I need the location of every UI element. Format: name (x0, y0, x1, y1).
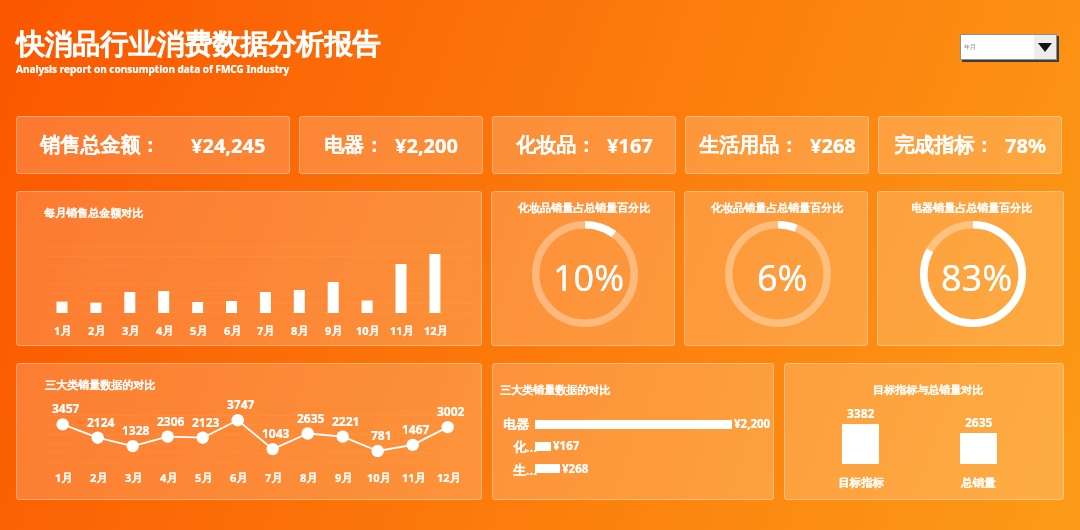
staticText: 每月销售总金额对比 (44, 206, 143, 220)
staticText: 1328 (122, 422, 150, 438)
staticText: 4月 (160, 470, 178, 485)
staticText: ¥24,245 (191, 132, 266, 159)
staticText: ¥167 (553, 438, 580, 454)
button[interactable]: 电器销量占总销量百分比 (877, 191, 1064, 346)
staticText: 3747 (227, 396, 255, 412)
staticText: 化… (513, 438, 538, 456)
staticText: 7月 (265, 470, 283, 485)
staticText: 8月 (291, 323, 309, 338)
staticText: 6月 (230, 470, 248, 485)
staticText: 3月 (122, 323, 140, 338)
button[interactable]: 每月销售总金额对比 (16, 191, 482, 346)
staticText: ¥2,200 (734, 416, 771, 432)
staticText: ¥268 (562, 461, 589, 477)
staticText: 快消品行业消费数据分析报告 (16, 27, 380, 62)
staticText: 1467 (402, 421, 430, 437)
staticText: 83% (941, 253, 1013, 302)
staticText: 8月 (300, 470, 318, 485)
staticText: 总销量 (961, 476, 996, 490)
staticText: 11月 (390, 323, 414, 338)
staticText: 12月 (424, 323, 448, 338)
staticText: 目标指标与总销量对比 (873, 383, 983, 397)
staticText: 10% (553, 253, 625, 302)
staticText: 9月 (335, 470, 353, 485)
staticText: 10月 (356, 323, 380, 338)
staticText: 三大类销量数据的对比 (500, 383, 610, 397)
button[interactable]: 三大类销量数据的对比 (492, 363, 774, 500)
staticText: 5月 (190, 323, 208, 338)
staticText: 生… (513, 461, 538, 479)
staticText: 1月 (54, 323, 72, 338)
staticText: 2635 (965, 414, 993, 430)
staticText: 3382 (847, 405, 875, 421)
staticText: 9月 (325, 323, 343, 338)
button[interactable]: 化妆品销量占总销量百分比 (684, 191, 868, 346)
staticText: 1月 (55, 470, 73, 485)
button[interactable]: 化妆品销量占总销量百分比 (491, 191, 675, 346)
staticText: 4月 (156, 323, 174, 338)
staticText: 12月 (437, 470, 461, 485)
staticText: 电器销量占总销量百分比 (911, 201, 1032, 215)
staticText: 2635 (297, 410, 325, 426)
staticText: 781 (371, 427, 392, 443)
staticText: 3002 (437, 403, 465, 419)
staticText: 1043 (262, 425, 290, 441)
button[interactable]: 完成指标： (878, 116, 1062, 174)
button[interactable]: 电器： (299, 116, 483, 174)
staticText: 5月 (195, 470, 213, 485)
staticText: 年月 (964, 43, 976, 51)
staticText: 化妆品： (516, 133, 596, 158)
button[interactable]: 销售总金额： (16, 116, 290, 174)
staticText: 2123 (192, 414, 220, 430)
staticText: 2月 (90, 470, 108, 485)
staticText: ¥268 (810, 132, 856, 159)
staticText: 销售总金额： (40, 133, 160, 158)
staticText: 2124 (87, 414, 115, 430)
staticText: 生活用品： (699, 133, 799, 158)
staticText: 7月 (257, 323, 275, 338)
staticText: 2月 (88, 323, 106, 338)
staticText: Analysis report on consumption data of F… (16, 62, 290, 76)
staticText: 2306 (157, 413, 185, 429)
staticText: ¥2,200 (395, 132, 458, 159)
button[interactable]: 目标指标与总销量对比 (784, 363, 1064, 500)
staticText: 化妆品销量占总销量百分比 (518, 201, 650, 215)
staticText: 6% (757, 253, 808, 302)
staticText: 化妆品销量占总销量百分比 (711, 201, 843, 215)
staticText: ¥167 (607, 132, 653, 159)
staticText: 目标指标 (838, 476, 884, 490)
staticText: 11月 (402, 470, 426, 485)
staticText: 电器： (324, 133, 384, 158)
button[interactable]: Select month (960, 34, 1057, 60)
staticText: 2221 (332, 413, 360, 429)
staticText: 78% (1005, 132, 1046, 159)
staticText: 6月 (224, 323, 242, 338)
button[interactable]: 三大类销量数据的对比 (16, 363, 482, 500)
staticText: 3月 (125, 470, 143, 485)
staticText: 完成指标： (894, 133, 994, 158)
button[interactable]: 化妆品： (492, 116, 676, 174)
staticText: 3457 (52, 400, 80, 416)
button[interactable]: 生活用品： (685, 116, 869, 174)
staticText: 10月 (367, 470, 391, 485)
staticText: 三大类销量数据的对比 (45, 378, 155, 392)
staticText: 电器 (503, 416, 529, 432)
